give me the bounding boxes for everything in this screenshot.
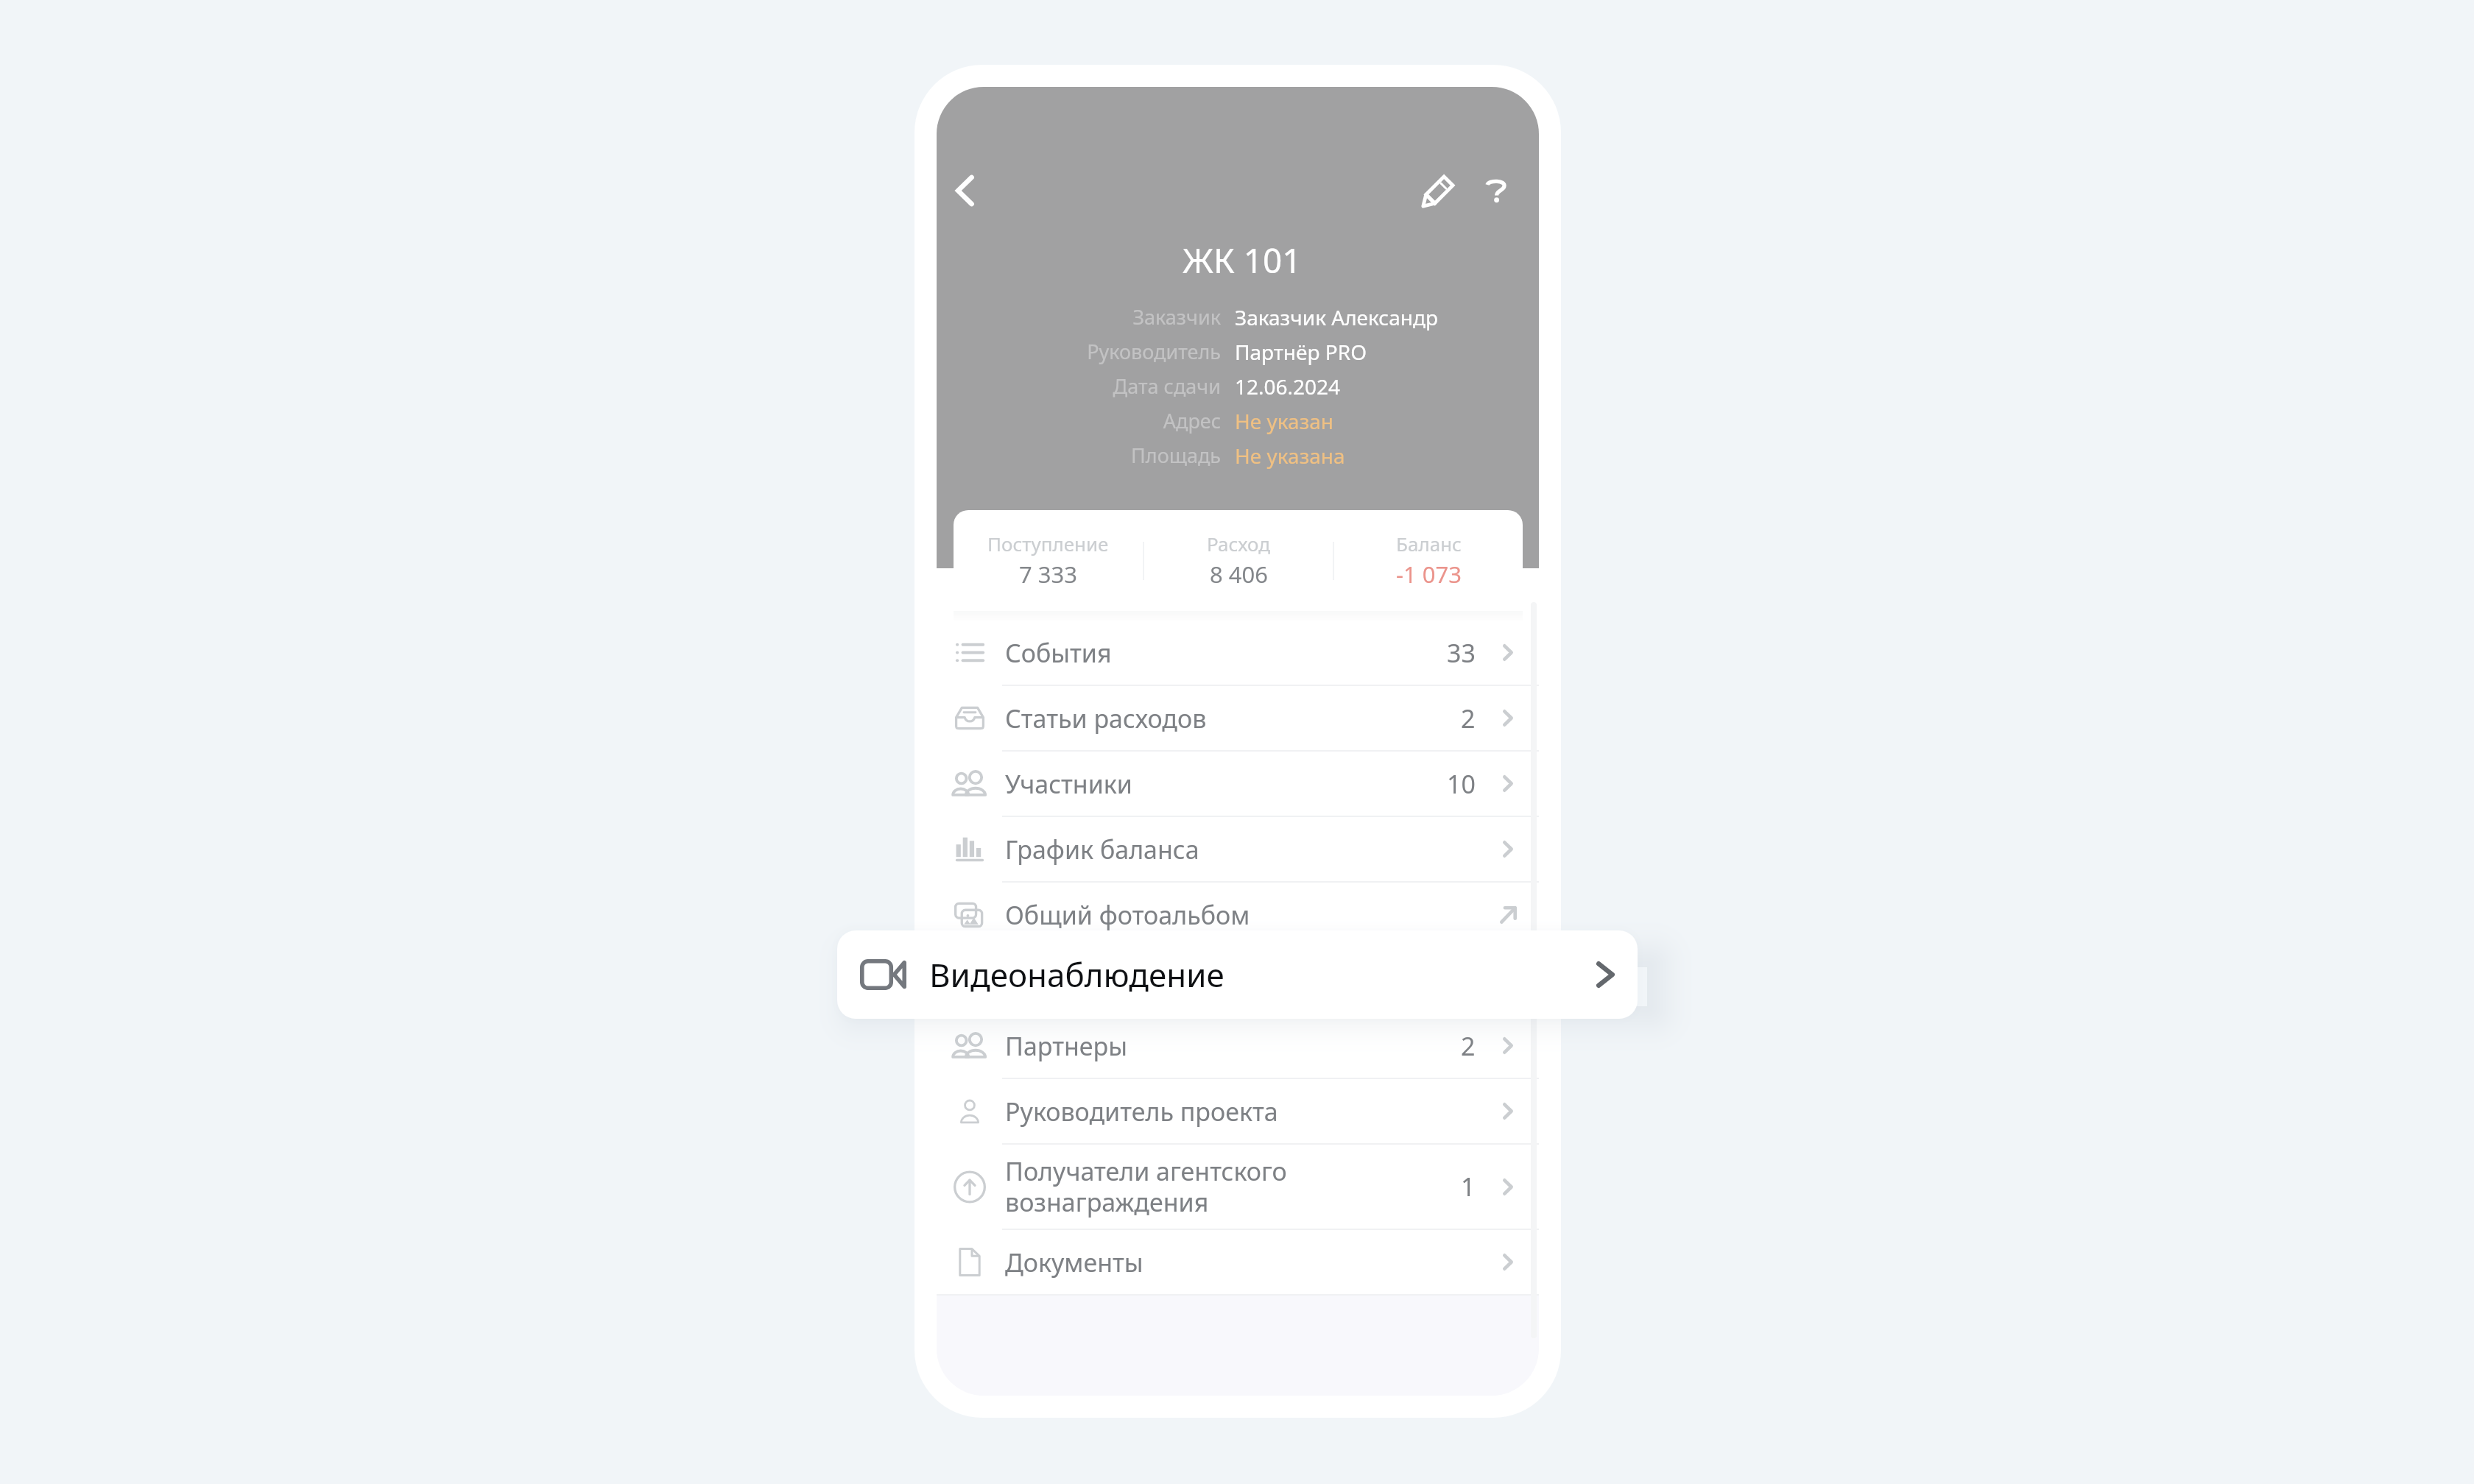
button[interactable]: Участники	[937, 752, 1539, 816]
button[interactable]: Получатели агентского вознаграждения	[937, 1145, 1539, 1229]
staticText: Получатели агентского вознаграждения	[1005, 1154, 1461, 1219]
staticText: Дата сдачи	[1113, 372, 1221, 400]
staticText: Руководитель проекта	[1005, 1095, 1503, 1128]
staticText: Участники	[1005, 767, 1447, 801]
button[interactable]: Общий фотоальбом	[937, 883, 1539, 947]
staticText: Баланс	[1396, 531, 1462, 556]
staticText: Поступление	[987, 531, 1109, 556]
staticText: График баланса	[1005, 833, 1503, 866]
staticText: 12.06.2024	[1235, 372, 1341, 400]
staticText: 2	[1461, 1029, 1476, 1063]
button[interactable]: Видеонаблюдение	[837, 930, 1638, 1019]
staticText: 1	[1461, 1170, 1476, 1204]
staticText: Заказчик Александр	[1235, 303, 1438, 331]
staticText: 8 406	[1210, 559, 1268, 590]
staticText: Площадь	[1130, 442, 1221, 469]
staticText: События	[1005, 636, 1447, 670]
staticText: Партнеры	[1005, 1029, 1461, 1063]
staticText: 33	[1447, 636, 1476, 670]
staticText: Документы	[1005, 1245, 1503, 1279]
button[interactable]: График баланса	[937, 817, 1539, 881]
staticText: Не указана	[1235, 442, 1345, 470]
staticText: -1 073	[1396, 559, 1462, 590]
staticText: 10	[1447, 767, 1476, 801]
staticText: Партнёр PRO	[1235, 338, 1367, 366]
staticText: Расход	[1207, 531, 1271, 556]
button[interactable]: Статьи расходов	[937, 686, 1539, 750]
staticText: Не указан	[1235, 407, 1334, 435]
staticText: 2	[1461, 702, 1476, 735]
staticText: 7 333	[1019, 559, 1077, 590]
staticText: Видеонаблюдение	[929, 953, 1573, 997]
button[interactable]: Back	[940, 166, 990, 216]
button[interactable]: События	[937, 621, 1539, 685]
button[interactable]: Edit	[1412, 164, 1465, 217]
staticText: Видеонаблюдение	[1005, 964, 1503, 997]
button[interactable]: Видеонаблюдение	[937, 948, 1539, 1012]
staticText: Общий фотоальбом	[1005, 898, 1503, 932]
button[interactable]: Партнеры	[937, 1014, 1539, 1078]
button[interactable]: Руководитель проекта	[937, 1079, 1539, 1143]
staticText: Руководитель	[1087, 338, 1221, 365]
staticText: Заказчик	[1132, 303, 1221, 331]
staticText: Адрес	[1163, 407, 1221, 434]
staticText: Статьи расходов	[1005, 702, 1461, 735]
button[interactable]: Документы	[937, 1230, 1539, 1294]
button[interactable]: Help	[1470, 164, 1523, 217]
staticText: ЖК 101	[1183, 237, 1302, 281]
